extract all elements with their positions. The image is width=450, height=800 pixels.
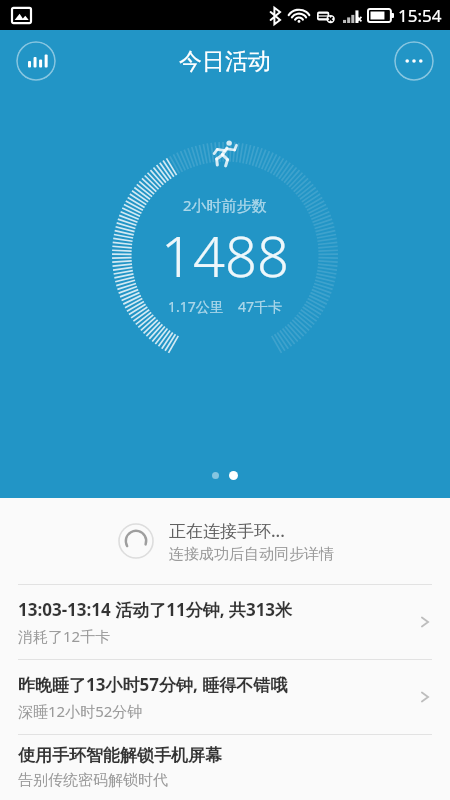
button[interactable]: Statistics xyxy=(16,41,56,81)
staticText: 2小时前步数 xyxy=(183,195,267,215)
button[interactable]: 使用手环智能解锁手机屏幕 xyxy=(0,735,450,800)
button[interactable]: More options xyxy=(394,41,434,81)
staticText: 1488 xyxy=(161,217,289,293)
staticText: 今日活动 xyxy=(179,47,271,76)
staticText: 深睡12小时52分钟 xyxy=(18,701,143,721)
button[interactable]: 正在连接手环... xyxy=(0,498,450,584)
staticText: 连接成功后自动同步详情 xyxy=(169,545,334,564)
button[interactable]: 13:03-13:14 活动了11分钟, 共313米 xyxy=(0,585,450,659)
staticText: 使用手环智能解锁手机屏幕 xyxy=(18,745,222,766)
staticText: 1.17公里 xyxy=(168,297,224,316)
staticText: 13:03-13:14 活动了11分钟, 共313米 xyxy=(18,598,293,621)
staticText: 15:54 xyxy=(398,4,442,27)
staticText: 47千卡 xyxy=(238,297,283,316)
staticText: 消耗了12千卡 xyxy=(18,626,111,646)
button[interactable]: 昨晚睡了13小时57分钟, 睡得不错哦 xyxy=(0,660,450,734)
staticText: 告别传统密码解锁时代 xyxy=(18,771,168,790)
staticText: 昨晚睡了13小时57分钟, 睡得不错哦 xyxy=(18,673,288,696)
staticText: 正在连接手环... xyxy=(169,519,285,542)
